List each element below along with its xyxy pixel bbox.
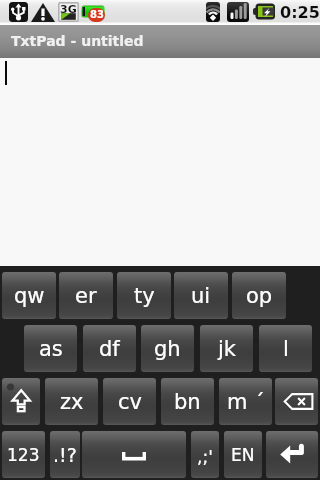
staticText: df [99, 337, 120, 361]
staticText: .!? [53, 444, 77, 466]
button[interactable]: ,;' [191, 431, 219, 478]
button[interactable]: as [24, 325, 77, 372]
staticText: ,;' [197, 447, 213, 467]
button[interactable]: .!? [50, 431, 80, 478]
button[interactable]: Backspace [275, 378, 318, 425]
button[interactable]: l [259, 325, 312, 372]
staticText: m ´ [227, 390, 265, 414]
button[interactable]: er [59, 272, 113, 319]
staticText: bn [174, 390, 201, 414]
button[interactable]: EN [224, 431, 262, 478]
button[interactable]: jk [200, 325, 253, 372]
staticText: ui [191, 284, 211, 308]
staticText: 3G [60, 3, 77, 14]
button[interactable]: Enter [266, 431, 318, 478]
button[interactable]: zx [45, 378, 98, 425]
staticText: cv [118, 390, 142, 414]
button[interactable]: gh [141, 325, 194, 372]
staticText: op [246, 284, 273, 308]
button[interactable]: m ´ [219, 378, 272, 425]
button[interactable]: Shift [2, 378, 40, 425]
staticText: er [75, 284, 97, 308]
button[interactable]: Space [82, 431, 186, 478]
staticText: 123 [7, 445, 40, 465]
staticText: as [39, 337, 63, 361]
button[interactable]: df [83, 325, 136, 372]
staticText: gh [154, 337, 181, 361]
button[interactable]: ty [117, 272, 171, 319]
staticText: jk [218, 337, 236, 361]
staticText: ty [134, 284, 155, 308]
button[interactable]: qw [2, 272, 56, 319]
button[interactable]: 123 [2, 431, 45, 478]
staticText: zx [60, 390, 84, 414]
staticText: 0:25 [280, 3, 320, 22]
staticText: TxtPad - untitled [11, 33, 144, 49]
button[interactable]: cv [103, 378, 156, 425]
staticText: qw [14, 284, 45, 308]
staticText: l [283, 337, 289, 361]
staticText: 83 [90, 9, 104, 21]
button[interactable]: ui [174, 272, 228, 319]
button[interactable]: bn [161, 378, 214, 425]
button[interactable]: op [232, 272, 286, 319]
staticText: EN [231, 445, 255, 465]
